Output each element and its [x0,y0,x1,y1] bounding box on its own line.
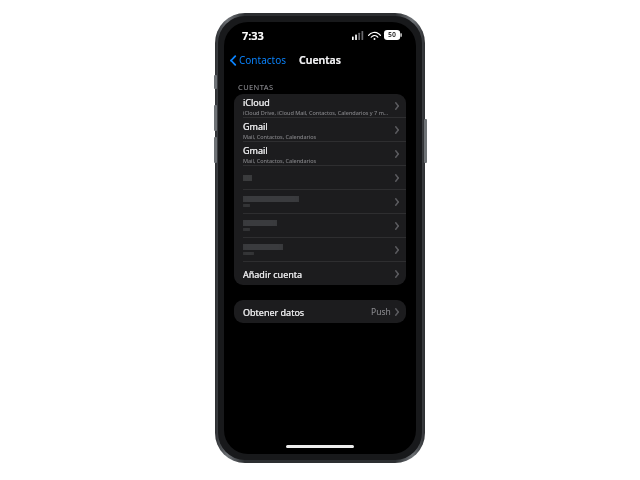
staticText: 50 [388,30,397,40]
staticText: Gmail [243,144,268,156]
staticText: iCloud Drive, iCloud Mail, Contactos, Ca… [243,109,391,116]
button[interactable]: iCloud [234,94,406,118]
staticText: Mail, Contactos, Calendarios [243,157,317,164]
staticText: Cuentas [299,53,341,67]
other: Side button [424,119,427,163]
button[interactable]: Gmail [234,118,406,142]
other: Volume down [214,137,217,163]
staticText: Añadir cuenta [243,268,395,280]
staticText: iCloud [243,96,270,108]
staticText: 7:33 [242,28,264,43]
button[interactable]: Obtener datos [234,300,406,323]
button[interactable]: Contactos [224,50,293,70]
staticText: Mail, Contactos, Calendarios [243,133,317,140]
staticText: Obtener datos [243,306,371,318]
button[interactable] [234,214,406,238]
button[interactable] [234,190,406,214]
button[interactable]: Añadir cuenta [234,262,406,285]
staticText: CUENTAS [238,82,274,92]
staticText: Push [371,306,391,318]
button[interactable]: Gmail [234,142,406,166]
button[interactable] [234,166,406,190]
button[interactable] [234,238,406,262]
staticText: Contactos [239,53,287,67]
staticText: Gmail [243,120,268,132]
other: Volume up [214,105,217,131]
other: Silence switch [214,75,217,89]
